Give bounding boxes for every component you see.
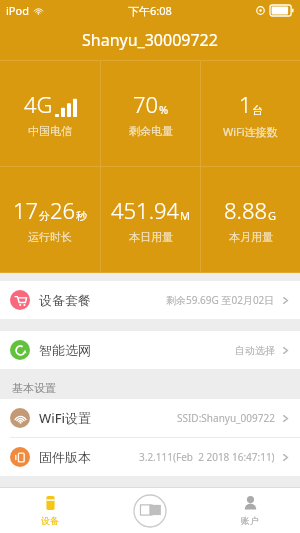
staticText: 451.94 bbox=[111, 195, 180, 225]
staticText: 分 bbox=[39, 209, 50, 223]
staticText: 70 bbox=[133, 89, 159, 119]
staticText: 8.88 bbox=[224, 195, 268, 225]
staticText: 设备 bbox=[41, 515, 59, 526]
staticText: 台 bbox=[252, 103, 263, 117]
button[interactable]: 固件版本 bbox=[0, 438, 300, 476]
button[interactable]: 设备套餐 bbox=[0, 281, 300, 319]
staticText: 设备套餐 bbox=[39, 292, 91, 308]
staticText: 1 bbox=[239, 89, 252, 119]
staticText: iPod bbox=[6, 3, 29, 18]
staticText: 秒 bbox=[76, 209, 87, 223]
staticText: 剩余电量 bbox=[129, 124, 173, 138]
staticText: 账户 bbox=[241, 515, 259, 526]
staticText: 下午6:08 bbox=[128, 3, 172, 18]
button[interactable]: WiFi设置 bbox=[0, 399, 300, 437]
staticText: 本日用量 bbox=[129, 230, 173, 244]
staticText: Shanyu_30009722 bbox=[82, 29, 218, 51]
staticText: WiFi连接数 bbox=[223, 124, 278, 139]
staticText: 17 bbox=[13, 195, 39, 225]
button[interactable]: 设备 bbox=[0, 488, 100, 533]
staticText: 运行时长 bbox=[28, 230, 72, 244]
staticText: SSID:Shanyu_009722 bbox=[177, 411, 275, 425]
button[interactable]: 智能选网 bbox=[0, 331, 300, 369]
button[interactable]: 4G bbox=[0, 61, 100, 166]
staticText: 自动选择 bbox=[235, 344, 275, 357]
staticText: 3.2.111(Feb 2 2018 16:47:11) bbox=[139, 450, 275, 464]
button[interactable]: 账户 bbox=[200, 488, 300, 533]
staticText: 基本设置 bbox=[12, 381, 56, 395]
button[interactable]: 闪鱼 bbox=[100, 488, 200, 533]
button[interactable]: 17 bbox=[0, 167, 100, 272]
staticText: % bbox=[159, 102, 169, 117]
staticText: M bbox=[180, 208, 190, 223]
button[interactable]: 1 bbox=[201, 61, 300, 166]
staticText: 中国电信 bbox=[28, 124, 72, 138]
staticText: 4G bbox=[24, 89, 53, 119]
staticText: G bbox=[268, 208, 277, 223]
staticText: 剩余59.69G 至02月02日 bbox=[166, 293, 275, 307]
staticText: 智能选网 bbox=[39, 342, 91, 358]
staticText: 固件版本 bbox=[39, 449, 91, 465]
staticText: 26 bbox=[50, 195, 76, 225]
button[interactable]: 70 bbox=[101, 61, 200, 166]
staticText: 本月用量 bbox=[229, 230, 273, 244]
button[interactable]: 451.94 bbox=[101, 167, 200, 272]
staticText: WiFi设置 bbox=[39, 409, 92, 427]
button[interactable]: 8.88 bbox=[201, 167, 300, 272]
